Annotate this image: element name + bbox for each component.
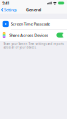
staticText: Screen Time Passcode	[11, 21, 50, 27]
staticText: Share Across Devices	[9, 32, 48, 38]
staticText: General	[26, 7, 41, 12]
staticText: Share your Screen Time settings and repo…	[3, 42, 63, 49]
button[interactable]: Share Across Devices	[0, 29, 67, 41]
button[interactable]: Settings	[0, 6, 17, 14]
staticText: Settings	[4, 7, 17, 12]
button[interactable]: Screen Time Passcode	[0, 19, 67, 29]
staticText: 9:41	[2, 0, 9, 6]
